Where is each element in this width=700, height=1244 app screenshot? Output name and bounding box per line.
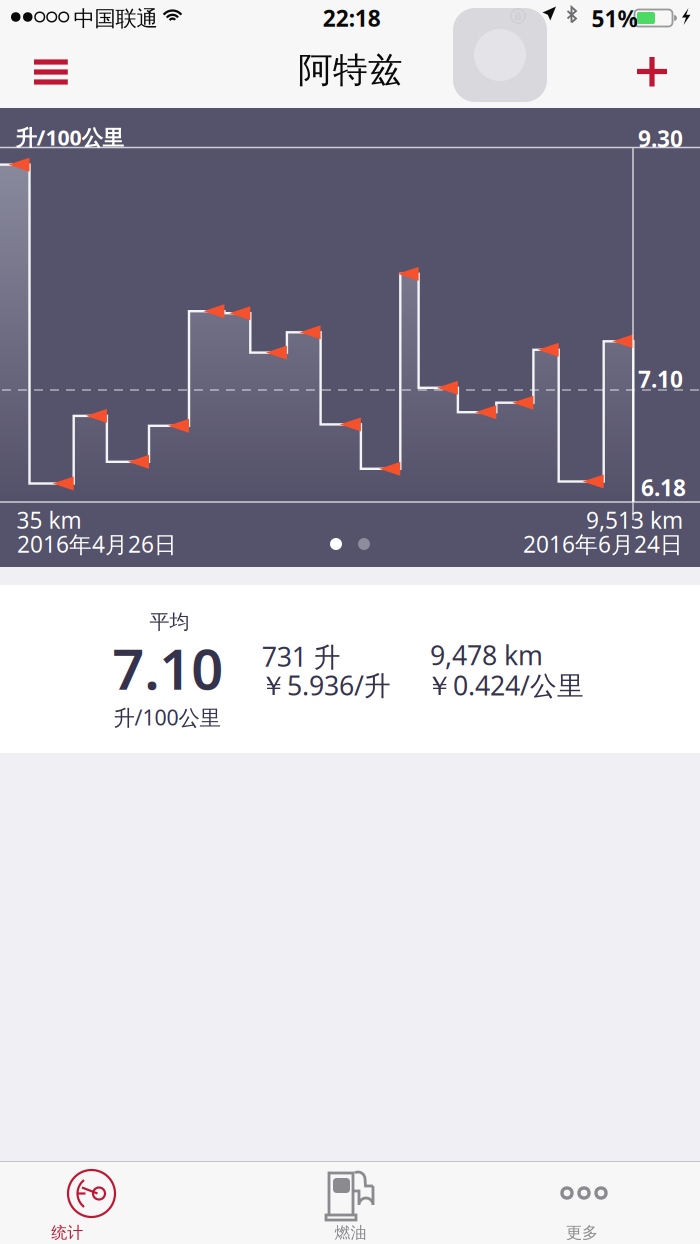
staticText: 平均 bbox=[149, 610, 189, 634]
staticText: 更多 bbox=[566, 1223, 598, 1243]
staticText: 7.10 bbox=[638, 364, 683, 394]
staticText: 中国联通 bbox=[74, 6, 158, 32]
staticText: 2016年4月26日 bbox=[17, 529, 177, 559]
staticText: 6.18 bbox=[641, 472, 686, 503]
button[interactable]: 统计 bbox=[0, 1162, 233, 1244]
staticText: 升/100公里 bbox=[15, 123, 123, 151]
staticText: 升/100公里 bbox=[113, 703, 220, 731]
staticText: 统计 bbox=[51, 1223, 83, 1243]
staticText: 51% bbox=[591, 3, 637, 34]
staticText: 731 升 bbox=[262, 639, 341, 674]
staticText: 9.30 bbox=[638, 123, 683, 154]
button[interactable]: 菜单 bbox=[11, 36, 91, 108]
staticText: 2016年6月24日 bbox=[523, 529, 683, 559]
button[interactable]: 更多 bbox=[466, 1162, 700, 1244]
staticText: 7.10 bbox=[112, 631, 223, 705]
staticText: 22:18 bbox=[323, 3, 381, 33]
staticText: ￥0.424/公里 bbox=[426, 667, 584, 703]
staticText: 35 km bbox=[16, 505, 81, 535]
staticText: ￥5.936/升 bbox=[260, 667, 391, 703]
staticText: 燃油 bbox=[334, 1223, 366, 1243]
button[interactable]: 添加 bbox=[612, 36, 692, 108]
staticText: 9,478 km bbox=[430, 637, 543, 673]
staticText: 阿特兹 bbox=[298, 49, 403, 91]
staticText: 9,513 km bbox=[586, 505, 683, 535]
button[interactable]: 燃油 bbox=[233, 1162, 466, 1244]
